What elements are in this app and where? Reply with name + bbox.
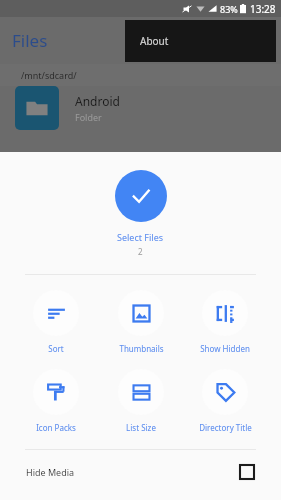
staticText: Icon Packs xyxy=(36,422,76,433)
staticText: About xyxy=(140,34,169,48)
button[interactable]: Thumbnails xyxy=(99,290,183,354)
button[interactable]: About xyxy=(125,20,276,62)
button[interactable]: Directory Title xyxy=(183,369,267,433)
staticText: /mnt/sdcard/ xyxy=(21,69,77,81)
button[interactable]: Show Hidden xyxy=(183,290,267,354)
staticText: List Size xyxy=(126,422,156,433)
button[interactable]: List Size xyxy=(99,369,183,433)
staticText: Show Hidden xyxy=(200,343,250,354)
button[interactable]: Icon Packs xyxy=(14,369,98,433)
button[interactable]: Select Files xyxy=(115,170,167,222)
staticText: Hide Media xyxy=(26,466,75,478)
staticText: 13:28 xyxy=(250,2,276,16)
staticText: Thumbnails xyxy=(119,343,164,354)
staticText: 83% xyxy=(220,3,238,15)
staticText: Android xyxy=(75,93,120,109)
staticText: Directory Title xyxy=(199,422,252,433)
staticText: Files xyxy=(12,29,48,52)
button[interactable]: Sort xyxy=(14,290,98,354)
staticText: 2 xyxy=(138,246,143,257)
staticText: Sort xyxy=(48,343,64,354)
staticText: Folder xyxy=(75,111,102,123)
staticText: Select Files xyxy=(117,231,164,243)
button[interactable]: Hide Media xyxy=(0,450,281,494)
